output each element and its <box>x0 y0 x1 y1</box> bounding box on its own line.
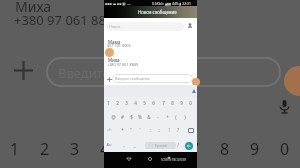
button[interactable]: Choose contact <box>185 21 194 30</box>
staticText: @ <box>111 114 116 120</box>
staticText: 9 <box>180 100 183 106</box>
button[interactable]: . <box>180 141 188 149</box>
button[interactable]: * <box>118 126 126 134</box>
staticText: # <box>121 114 124 120</box>
staticText: ; <box>158 127 160 133</box>
staticText: . <box>183 142 185 148</box>
button[interactable]: 1 <box>104 99 112 107</box>
button[interactable]: 0 <box>186 99 194 107</box>
staticText: 067 101 0006 <box>107 43 131 48</box>
button[interactable]: % <box>136 113 144 121</box>
staticText: + <box>166 114 169 120</box>
staticText: Abc <box>106 143 112 147</box>
staticText: 4 <box>98 138 111 160</box>
button[interactable]: 3 <box>122 99 130 107</box>
staticText: _ <box>133 142 136 148</box>
staticText: 5 <box>128 138 141 160</box>
button[interactable]: 6 <box>149 99 157 107</box>
button[interactable]: Expand suggestions <box>192 89 196 93</box>
button[interactable]: 5 <box>140 99 148 107</box>
button[interactable]: ? <box>174 126 182 134</box>
staticText: +380 97 061 8845 <box>14 11 121 29</box>
staticText: 1 <box>107 100 110 106</box>
button[interactable]: & <box>145 113 153 121</box>
button[interactable]: $ <box>127 113 135 121</box>
staticText: Введите сообщение <box>115 76 151 81</box>
button[interactable]: ! <box>165 126 173 134</box>
button[interactable]: 9 <box>177 99 185 107</box>
button[interactable]: ; <box>155 126 163 134</box>
button[interactable]: 8 <box>168 99 176 107</box>
staticText: 9 <box>248 138 261 160</box>
staticText: Поиск <box>109 24 121 29</box>
staticText: ' <box>139 127 141 133</box>
staticText: 0 <box>189 100 192 106</box>
staticText: =\< <box>107 128 112 132</box>
button[interactable]: - <box>154 113 162 121</box>
button[interactable]: ' <box>136 126 144 134</box>
button[interactable]: " <box>127 126 135 134</box>
staticText: & <box>147 114 151 120</box>
staticText: Миха <box>15 0 52 16</box>
staticText: 0 <box>278 138 291 160</box>
button[interactable]: : <box>146 126 154 134</box>
staticText: 7 <box>162 100 165 106</box>
staticText: " <box>130 127 132 133</box>
staticText: ▪▪▪ ▬ ▪▪ ▣ — <box>105 1 131 6</box>
staticText: 7 <box>188 138 201 160</box>
staticText: ) <box>184 114 186 120</box>
staticText: Миха <box>108 57 120 63</box>
staticText: Русский <box>155 144 167 148</box>
staticText: 2 <box>116 100 119 106</box>
staticText: Новое сообщение <box>138 9 177 15</box>
button[interactable]: =\< <box>105 126 113 134</box>
staticText: - <box>157 114 159 120</box>
staticText: SCREEN RECORDER <box>161 158 187 162</box>
button[interactable]: Миха <box>104 52 197 70</box>
button[interactable]: , <box>120 141 128 149</box>
button[interactable]: Введите сообщение <box>112 74 193 83</box>
staticText: 6 <box>158 138 171 160</box>
staticText: 4 <box>134 100 137 106</box>
staticText: 2 <box>38 138 51 160</box>
staticText: 8 <box>171 100 174 106</box>
staticText: 0.6Kb/c ▲▮▮ 44% ▮ 22:31 <box>152 1 191 6</box>
button[interactable]: Back <box>126 156 132 162</box>
staticText: +380 97 061 8845 <box>107 62 139 67</box>
button[interactable]: ( <box>172 113 180 121</box>
staticText: Мама <box>108 39 121 45</box>
staticText: 8 <box>218 138 231 160</box>
staticText: * <box>121 127 124 133</box>
button[interactable]: Новое сообщение <box>104 6 197 18</box>
staticText: : <box>149 127 151 133</box>
staticText: 6 <box>152 100 155 106</box>
staticText: % <box>138 114 142 120</box>
button[interactable]: Abc <box>105 141 113 149</box>
staticText: 3 <box>68 138 81 160</box>
staticText: , <box>123 142 125 148</box>
staticText: 3 <box>125 100 128 106</box>
button[interactable]: 7 <box>159 99 167 107</box>
staticText: / <box>177 142 179 148</box>
button[interactable]: @ <box>109 113 117 121</box>
button[interactable]: Home <box>147 156 153 162</box>
staticText: 5 <box>143 100 146 106</box>
button[interactable]: Send <box>185 142 193 150</box>
button[interactable]: Мама <box>104 34 197 52</box>
button[interactable]: ) <box>181 113 189 121</box>
staticText: ! <box>168 127 170 133</box>
staticText: ? <box>177 127 179 133</box>
button[interactable]: / <box>174 141 182 149</box>
staticText: Введите сообщение <box>58 64 185 82</box>
button[interactable]: 4 <box>131 99 139 107</box>
button[interactable]: + <box>163 113 171 121</box>
button[interactable]: 2 <box>113 99 121 107</box>
button[interactable]: _ <box>130 141 138 149</box>
button[interactable]: Поиск <box>106 22 184 31</box>
button[interactable]: # <box>118 113 126 121</box>
button[interactable]: Backspace <box>188 128 194 133</box>
button[interactable]: Русский <box>145 142 176 149</box>
staticText: ( <box>175 114 177 120</box>
staticText: 1 <box>8 138 21 160</box>
staticText: $ <box>130 114 133 120</box>
